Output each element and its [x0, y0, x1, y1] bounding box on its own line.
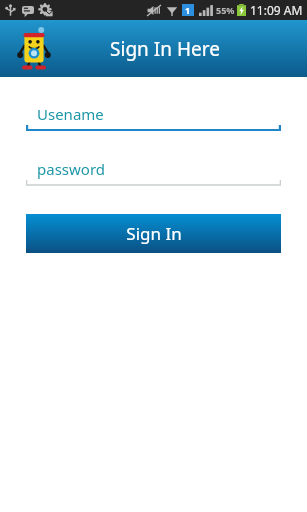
staticText: 11:09 AM	[250, 2, 303, 18]
staticText: 55%	[216, 4, 235, 16]
staticText: Sign In	[126, 222, 182, 245]
button[interactable]: Sign In	[26, 214, 281, 253]
staticText: Usename	[37, 104, 104, 124]
staticText: password	[37, 159, 105, 179]
button[interactable]: password	[26, 159, 281, 188]
button[interactable]: Usename	[26, 104, 281, 133]
other: App logo	[19, 28, 49, 70]
staticText: 1	[185, 4, 191, 16]
staticText: Sign In Here	[110, 36, 220, 62]
